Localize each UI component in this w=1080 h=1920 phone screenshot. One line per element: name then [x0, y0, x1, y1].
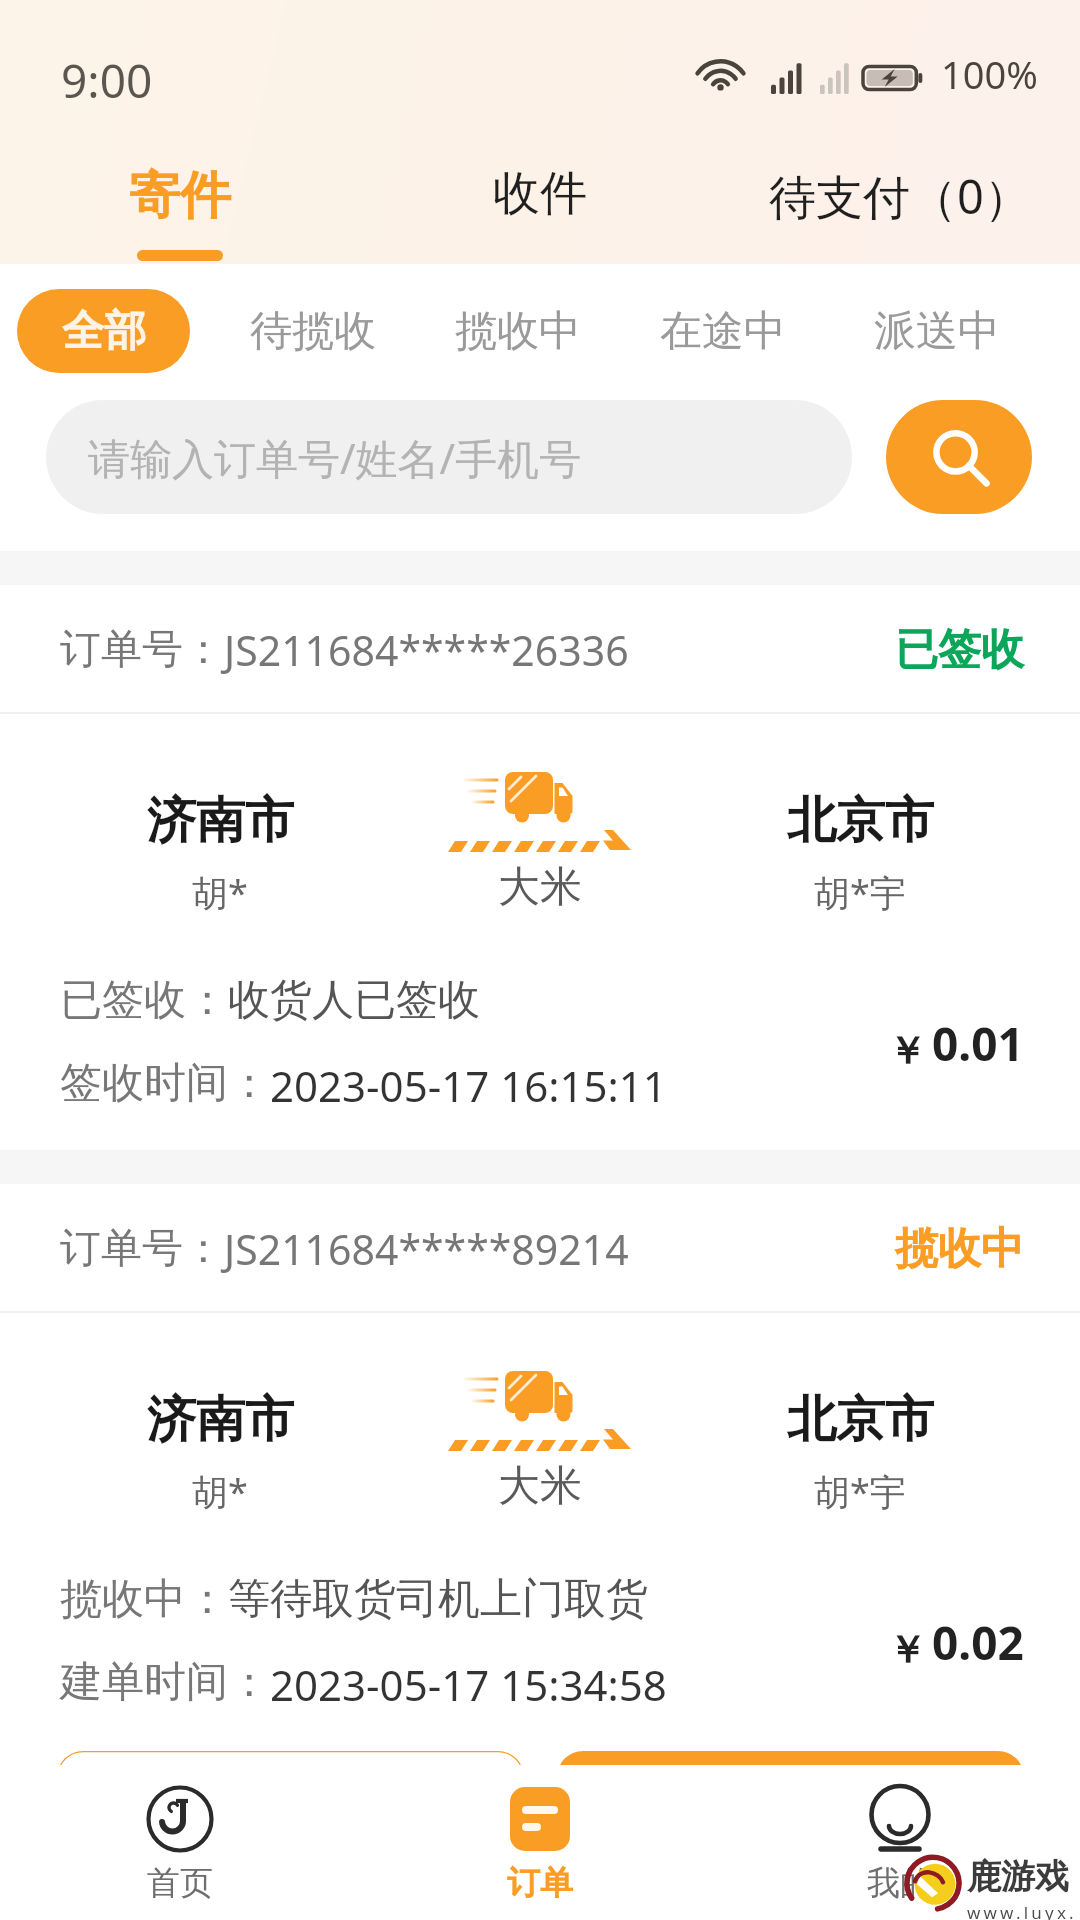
- button[interactable]: 待揽收: [210, 289, 415, 373]
- button[interactable]: 首页: [0, 1765, 360, 1920]
- staticText: 再来一单: [207, 1775, 375, 1828]
- button[interactable]: 订单号：: [0, 1184, 1080, 1749]
- staticText: 揽收中：: [60, 1573, 228, 1626]
- button[interactable]: 揽收中: [415, 289, 620, 373]
- staticText: 2023-05-17 15:34:58: [270, 1656, 667, 1713]
- staticText: 全部: [62, 305, 146, 358]
- staticText: 订单: [507, 1862, 573, 1904]
- button[interactable]: 全部: [17, 289, 190, 373]
- button[interactable]: 收件: [360, 140, 720, 264]
- staticText: 订单号：: [60, 1223, 224, 1275]
- button[interactable]: 在途中: [620, 289, 825, 373]
- staticText: ￥: [888, 1626, 926, 1674]
- button[interactable]: 请输入订单号/姓名/手机号: [46, 400, 852, 514]
- button[interactable]: 寄件: [0, 140, 360, 264]
- staticText: 济南市: [147, 790, 294, 852]
- staticText: 9:00: [61, 49, 153, 112]
- staticText: 北京市: [787, 790, 934, 852]
- staticText: 0.02: [932, 1611, 1024, 1674]
- staticText: 订单号：: [60, 624, 224, 676]
- button[interactable]: 再来一单: [57, 1751, 524, 1851]
- staticText: www.luyx.cn: [967, 1901, 1080, 1920]
- staticText: 鹿游戏: [967, 1855, 1069, 1898]
- staticText: 0.01: [932, 1012, 1024, 1075]
- staticText: 查看详情: [707, 1775, 875, 1828]
- staticText: 在途中: [660, 305, 786, 358]
- staticText: JS211684*****26336: [224, 622, 629, 678]
- button[interactable]: 搜索: [886, 400, 1032, 514]
- staticText: 胡*: [192, 1467, 248, 1516]
- staticText: ￥: [888, 1027, 926, 1075]
- staticText: 胡*宇: [814, 1467, 906, 1516]
- button[interactable]: 查看详情: [557, 1751, 1024, 1851]
- staticText: 胡*宇: [814, 868, 906, 917]
- button[interactable]: 订单: [360, 1765, 720, 1920]
- staticText: 100%: [941, 48, 1038, 100]
- staticText: 收件: [493, 164, 587, 223]
- staticText: 北京市: [787, 1389, 934, 1451]
- staticText: 请输入订单号/姓名/手机号: [88, 429, 582, 486]
- staticText: 待支付（0）: [769, 164, 1031, 228]
- button[interactable]: 派送中: [839, 289, 1035, 373]
- staticText: 2023-05-17 16:15:11: [270, 1057, 667, 1114]
- staticText: 胡*: [192, 868, 248, 917]
- staticText: 首页: [147, 1862, 213, 1904]
- staticText: 派送中: [874, 305, 1000, 358]
- staticText: 已签收: [895, 623, 1024, 677]
- staticText: 寄件: [129, 164, 231, 228]
- button[interactable]: 我的: [720, 1765, 1080, 1920]
- staticText: 签收时间：: [60, 1057, 270, 1110]
- staticText: 我的: [867, 1862, 933, 1904]
- staticText: 已签收：: [60, 974, 228, 1027]
- staticText: 收货人已签收: [228, 974, 480, 1027]
- staticText: 济南市: [147, 1389, 294, 1451]
- staticText: 揽收中: [895, 1222, 1024, 1276]
- staticText: 建单时间：: [60, 1656, 270, 1709]
- button[interactable]: 待支付（0）: [720, 140, 1080, 264]
- staticText: 大米: [498, 1460, 582, 1513]
- staticText: 等待取货司机上门取货: [228, 1573, 648, 1626]
- staticText: 揽收中: [455, 305, 581, 358]
- button[interactable]: 订单号：: [0, 585, 1080, 1150]
- staticText: JS211684*****89214: [224, 1221, 629, 1277]
- staticText: 待揽收: [250, 305, 376, 358]
- staticText: 大米: [498, 861, 582, 914]
